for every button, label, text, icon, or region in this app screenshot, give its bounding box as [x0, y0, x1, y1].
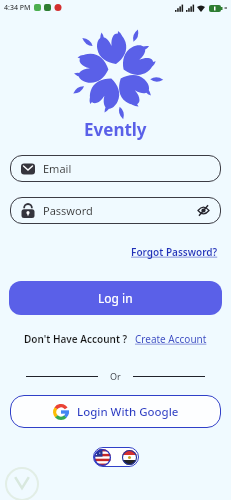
button[interactable]: Log in	[9, 281, 222, 315]
staticText: 4:34 PM	[4, 3, 31, 13]
button[interactable]	[93, 447, 139, 467]
button[interactable]: Forgot Password?	[131, 245, 218, 259]
staticText: Evently	[84, 118, 147, 141]
staticText: Log in	[98, 290, 133, 306]
staticText: Or	[110, 370, 121, 382]
button[interactable]: Create Account	[135, 332, 207, 346]
button[interactable]: Email	[10, 155, 221, 182]
button[interactable]: Password	[10, 197, 221, 224]
staticText: Don't Have Account ?	[24, 332, 128, 346]
staticText: Password	[43, 203, 93, 218]
staticText: Login With Google	[77, 404, 179, 420]
staticText: Email	[43, 161, 72, 176]
button[interactable]: Login With Google	[10, 395, 221, 428]
